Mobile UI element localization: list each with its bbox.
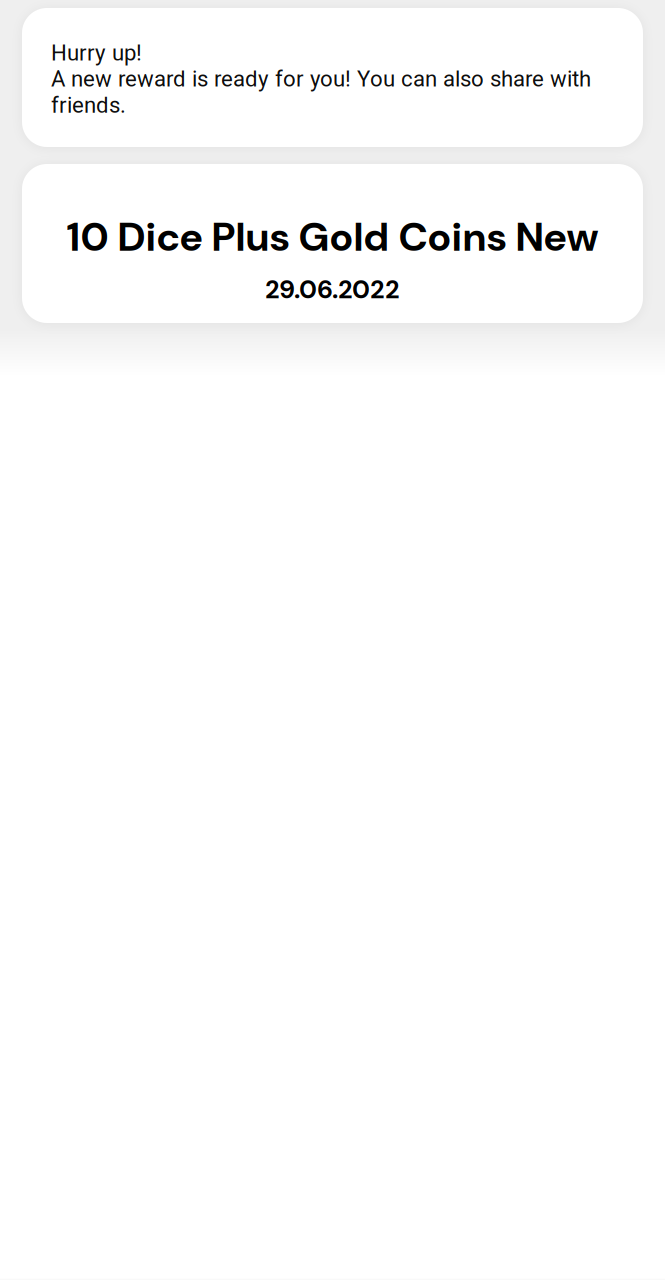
staticText: Hurry up! A new reward is ready for you!… [51, 40, 591, 118]
staticText: 10 Dice Plus Gold Coins New [66, 211, 598, 263]
staticText: 29.06.2022 [265, 273, 400, 306]
button[interactable]: Hurry up! A new reward is ready for you!… [22, 8, 643, 147]
button[interactable]: 10 Dice Plus Gold Coins New [22, 164, 643, 323]
